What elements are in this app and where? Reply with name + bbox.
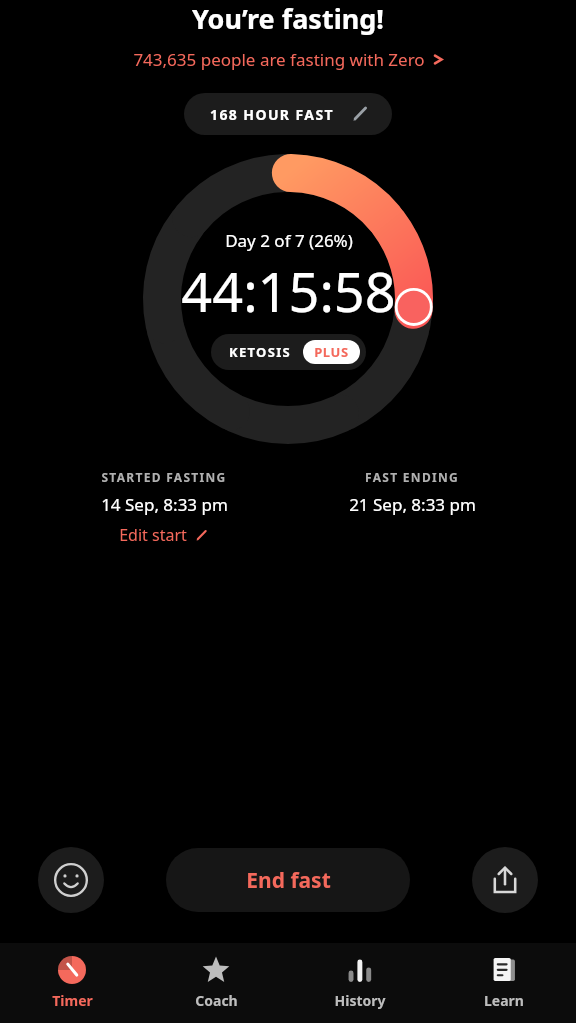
staticText: Day 2 of 7 (26%) [225, 229, 353, 252]
button[interactable]: Edit start [117, 522, 211, 548]
button[interactable]: Share [472, 847, 538, 913]
button[interactable]: Learn [432, 943, 576, 1023]
staticText: Learn [484, 991, 524, 1010]
staticText: Timer [52, 991, 93, 1010]
staticText: 14 Sep, 8:33 pm [101, 493, 228, 516]
staticText: Edit start [119, 524, 187, 546]
staticText: History [334, 991, 386, 1010]
staticText: 21 Sep, 8:33 pm [349, 493, 476, 516]
button[interactable]: Coach [144, 943, 288, 1023]
staticText: End fast [246, 866, 331, 895]
staticText: STARTED FASTING [101, 469, 227, 485]
staticText: KETOSIS [229, 343, 291, 361]
button[interactable]: End fast [166, 848, 410, 912]
staticText: FAST ENDING [365, 469, 459, 485]
button[interactable]: History [288, 943, 432, 1023]
button[interactable]: 168 HOUR FAST [184, 93, 392, 135]
staticText: 743,635 people are fasting with Zero [133, 48, 425, 71]
staticText: Coach [195, 991, 238, 1010]
staticText: 44:15:58 [181, 254, 396, 328]
staticText: You’re fasting! [192, 0, 384, 37]
button[interactable]: 743,635 people are fasting with Zero [125, 46, 451, 73]
staticText: PLUS [314, 343, 349, 361]
button[interactable]: KETOSIS [211, 334, 366, 370]
staticText: 168 HOUR FAST [210, 105, 334, 124]
button[interactable]: Timer [0, 943, 144, 1023]
button[interactable]: Mood [38, 847, 104, 913]
